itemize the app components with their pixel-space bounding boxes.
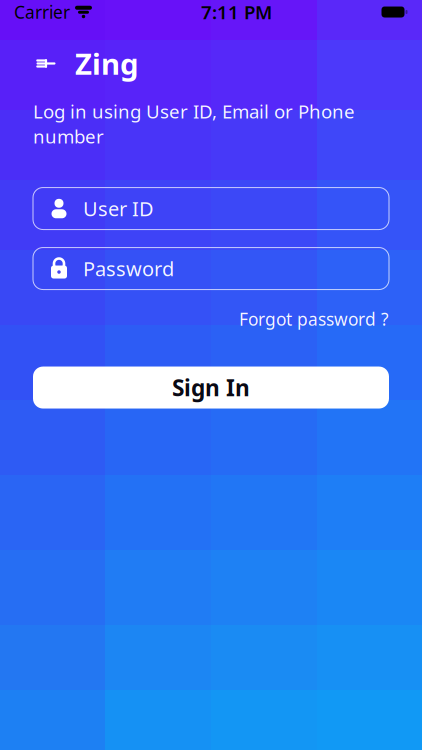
staticText: Sign In (172, 372, 250, 403)
button[interactable]: Forgot password ? (239, 307, 389, 330)
staticText: Zing (75, 44, 139, 83)
staticText: Carrier (14, 0, 70, 23)
button[interactable]: Password (33, 247, 389, 289)
button[interactable]: User ID (33, 187, 389, 229)
button[interactable]: Sign In (33, 367, 389, 409)
staticText: 7:11 PM (201, 0, 272, 24)
staticText: Forgot password ? (239, 307, 389, 330)
staticText: Log in using User ID, Email or Phone num… (33, 99, 355, 149)
staticText: User ID (83, 195, 154, 222)
button[interactable]: Back (33, 50, 59, 76)
staticText: Password (83, 255, 174, 282)
